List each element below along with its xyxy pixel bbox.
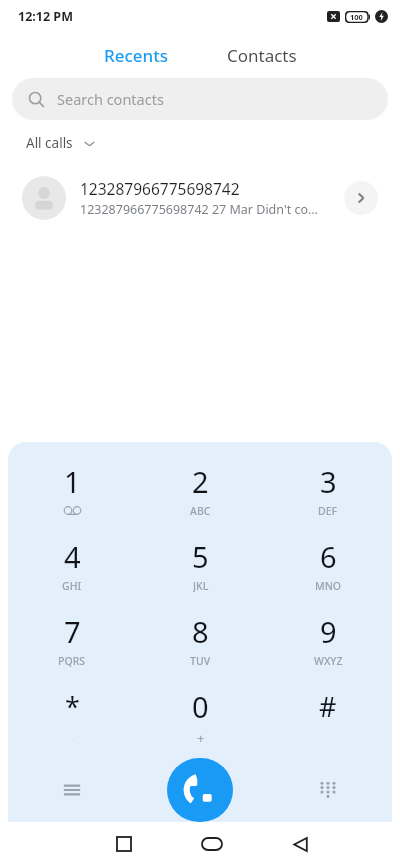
button[interactable]: Back bbox=[256, 822, 344, 866]
staticText: 8 bbox=[192, 612, 209, 651]
button[interactable]: Home bbox=[168, 822, 256, 866]
staticText: DEF bbox=[318, 504, 338, 517]
staticText: WXYZ bbox=[314, 654, 343, 667]
staticText: 2 bbox=[192, 462, 209, 501]
button[interactable]: 6 bbox=[264, 527, 392, 602]
button[interactable]: 2 bbox=[136, 452, 264, 527]
staticText: 5 bbox=[192, 537, 209, 576]
staticText: All calls bbox=[26, 134, 73, 152]
staticText: JKL bbox=[193, 579, 209, 592]
button[interactable]: 7 bbox=[8, 602, 136, 677]
button[interactable]: 5 bbox=[136, 527, 264, 602]
staticText: 7 bbox=[64, 612, 81, 651]
staticText: + bbox=[197, 729, 205, 742]
button[interactable]: Contacts bbox=[209, 38, 315, 73]
staticText: 4 bbox=[64, 537, 81, 576]
button[interactable]: Call bbox=[167, 758, 233, 822]
button[interactable]: # bbox=[264, 677, 392, 752]
staticText: ABC bbox=[190, 504, 211, 517]
button[interactable]: All calls bbox=[24, 128, 98, 158]
button[interactable]: 4 bbox=[8, 527, 136, 602]
button[interactable]: 123287966775698742 bbox=[0, 166, 400, 230]
staticText: Search contacts bbox=[57, 89, 164, 109]
staticText: # bbox=[319, 688, 337, 725]
staticText: 12:12 PM bbox=[18, 8, 73, 25]
button[interactable]: Search contacts bbox=[12, 78, 388, 120]
staticText: 0 bbox=[192, 687, 209, 726]
button[interactable]: 1 bbox=[8, 452, 136, 527]
staticText: TUV bbox=[190, 654, 211, 667]
staticText: MNO bbox=[315, 579, 342, 592]
staticText: PQRS bbox=[58, 654, 86, 667]
staticText: GHI bbox=[62, 579, 82, 592]
staticText: * bbox=[65, 688, 80, 725]
button[interactable]: Recents bbox=[86, 38, 187, 73]
staticText: Recents bbox=[104, 44, 169, 67]
staticText: 9 bbox=[320, 612, 337, 651]
staticText: 3 bbox=[320, 462, 337, 501]
button[interactable]: * bbox=[8, 677, 136, 752]
staticText: 100 bbox=[350, 12, 363, 22]
staticText: 1 bbox=[64, 462, 81, 501]
staticText: 123287966775698742 bbox=[80, 178, 240, 199]
button[interactable]: 8 bbox=[136, 602, 264, 677]
button[interactable]: Keypad bbox=[264, 758, 392, 822]
staticText: 6 bbox=[320, 537, 337, 576]
staticText: 123287966775698742 27 Mar Didn't co… bbox=[80, 201, 318, 218]
button[interactable]: Call details bbox=[344, 181, 378, 215]
button[interactable]: Recent apps bbox=[80, 822, 168, 866]
button[interactable]: More options bbox=[8, 758, 136, 822]
button[interactable]: 3 bbox=[264, 452, 392, 527]
staticText: Contacts bbox=[227, 44, 297, 67]
button[interactable]: 9 bbox=[264, 602, 392, 677]
button[interactable]: 0 bbox=[136, 677, 264, 752]
